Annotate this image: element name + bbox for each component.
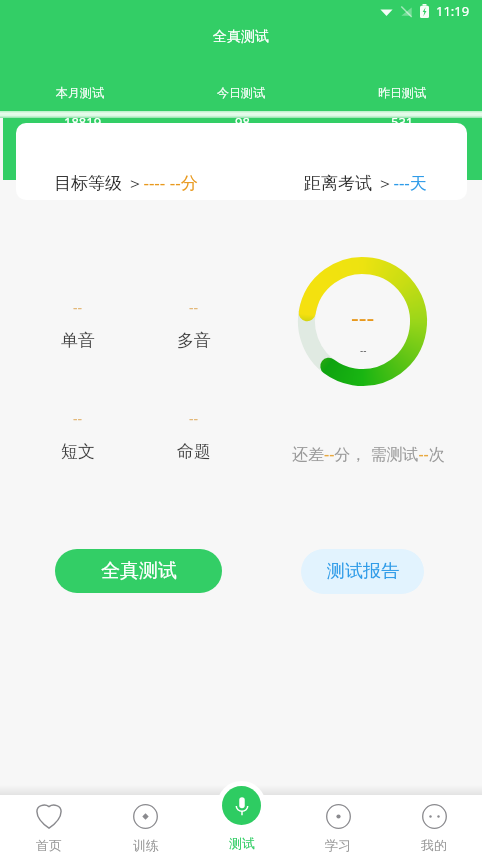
staticText: 我的 — [421, 837, 447, 853]
button[interactable]: -- — [154, 406, 234, 465]
staticText: 首页 — [36, 837, 62, 853]
staticText: 单音 — [61, 330, 95, 351]
staticText: -- — [73, 298, 83, 317]
staticText: 本月测试 — [56, 85, 104, 100]
button[interactable]: 今日测试 — [160, 79, 321, 105]
button[interactable]: 目标等级 ＞---- --分 — [16, 169, 238, 195]
staticText: 昨日测试 — [378, 85, 426, 100]
staticText: -- — [360, 343, 367, 357]
staticText: 命题 — [177, 441, 211, 462]
button[interactable]: 测试 — [194, 795, 290, 856]
staticText: 测试 — [229, 835, 255, 851]
staticText: -- — [189, 409, 199, 428]
button[interactable]: -- — [38, 295, 118, 354]
staticText: 测试报告 — [327, 560, 399, 583]
staticText: 训练 — [133, 837, 159, 853]
staticText: 距离考试 ＞---天 — [304, 171, 427, 194]
staticText: 18819 — [64, 113, 102, 131]
staticText: 目标等级 ＞---- --分 — [54, 171, 198, 194]
staticText: 学习 — [325, 837, 351, 853]
button[interactable]: 首页 — [0, 795, 97, 856]
staticText: 98 — [235, 113, 250, 131]
staticText: 531 — [391, 113, 414, 131]
staticText: 今日测试 — [217, 85, 265, 100]
staticText: 还差--分， 需测试--次 — [292, 443, 445, 465]
button[interactable]: 本月测试 — [0, 79, 160, 105]
button[interactable]: 昨日测试 — [321, 79, 482, 105]
button[interactable]: 全真测试 — [55, 549, 222, 593]
button[interactable]: -- — [154, 295, 234, 354]
staticText: 全真测试 — [101, 559, 177, 583]
staticText: --- — [351, 300, 375, 333]
button[interactable]: 测试报告 — [301, 549, 424, 594]
staticText: -- — [189, 298, 199, 317]
staticText: 11:19 — [436, 2, 470, 20]
button[interactable]: -- — [38, 406, 118, 465]
staticText: 短文 — [61, 441, 95, 462]
button[interactable]: 我的 — [386, 795, 482, 856]
button[interactable]: 距离考试 ＞---天 — [252, 169, 467, 195]
staticText: -- — [73, 409, 83, 428]
button[interactable]: 学习 — [290, 795, 386, 856]
staticText: 多音 — [177, 330, 211, 351]
button[interactable]: 训练 — [97, 795, 194, 856]
staticText: 全真测试 — [213, 28, 269, 46]
button[interactable]: 录音测试 — [222, 786, 261, 825]
